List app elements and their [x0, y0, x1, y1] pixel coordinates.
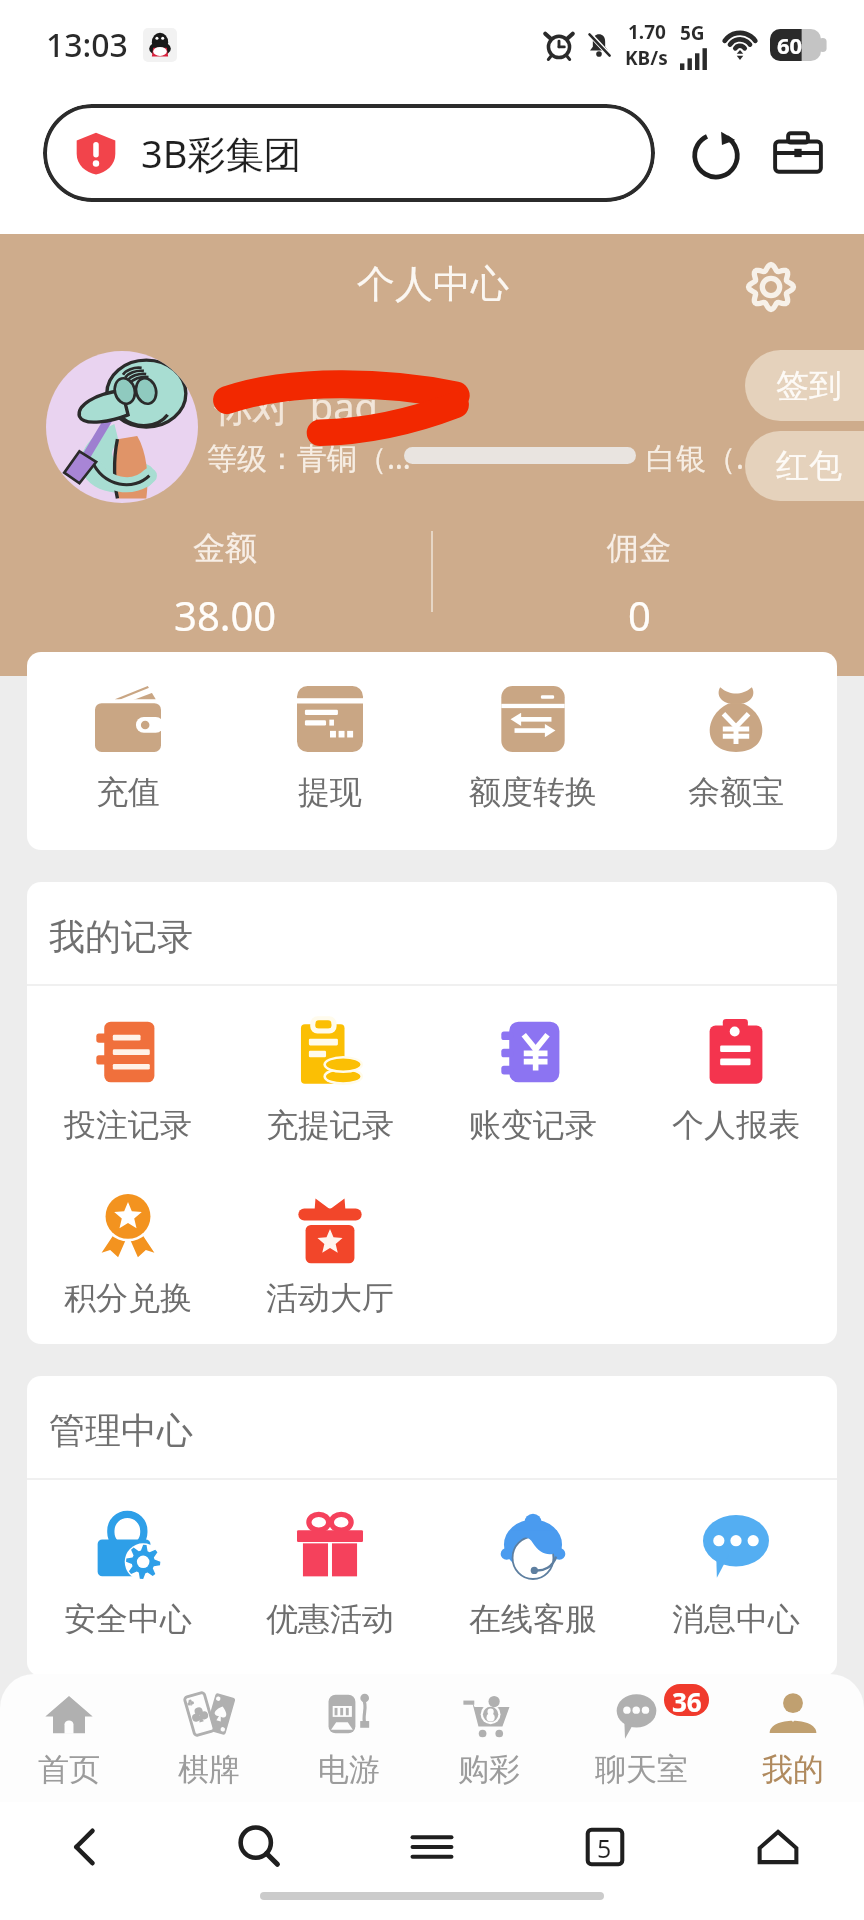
button[interactable]: 消息中心 — [634, 1513, 837, 1639]
button[interactable]: 36 — [560, 1682, 722, 1789]
staticText: 积分兑换 — [64, 1278, 192, 1318]
staticText: 个人中心 — [357, 260, 509, 308]
button[interactable]: Avatar — [46, 351, 198, 503]
staticText: 聊天室 — [595, 1750, 688, 1789]
staticText: 消息中心 — [672, 1599, 800, 1639]
button[interactable]: 在线客服 — [431, 1513, 634, 1639]
staticText: 5G — [680, 20, 705, 46]
button[interactable]: Back — [0, 1802, 172, 1892]
staticText: 个人报表 — [672, 1105, 800, 1145]
button[interactable]: 额度转换 — [431, 686, 634, 812]
staticText: 我的 — [762, 1750, 824, 1789]
button[interactable]: 安全中心 — [27, 1513, 229, 1639]
staticText: 棋牌 — [178, 1750, 240, 1789]
staticText: 白银（… — [646, 437, 760, 478]
staticText: 提现 — [298, 772, 362, 812]
button[interactable]: Home — [691, 1802, 864, 1892]
button[interactable]: 棋牌 — [138, 1682, 280, 1789]
button[interactable]: 个人报表 — [634, 1019, 837, 1145]
staticText: 电游 — [318, 1750, 380, 1789]
button[interactable]: 购彩 — [418, 1682, 560, 1789]
staticText: 优惠活动 — [266, 1599, 394, 1639]
button[interactable]: Tools — [766, 122, 830, 186]
button[interactable]: Reload — [684, 122, 748, 186]
staticText: 1.70 — [628, 19, 666, 45]
staticText: 佣金 — [607, 528, 671, 568]
staticText: 账变记录 — [469, 1105, 597, 1145]
staticText: 活动大厅 — [266, 1278, 394, 1318]
button[interactable]: 余额宝 — [634, 686, 837, 812]
button[interactable]: 积分兑换 — [27, 1192, 229, 1318]
staticText: 38.00 — [174, 588, 277, 642]
staticText: 额度转换 — [469, 772, 597, 812]
button[interactable]: 佣金 — [414, 528, 864, 642]
staticText: 红包 — [776, 445, 842, 487]
staticText: 等级：青铜（… — [207, 437, 411, 478]
button[interactable]: 充值 — [27, 686, 229, 812]
staticText: 你对 bag — [214, 380, 378, 432]
button[interactable]: Search — [172, 1802, 345, 1892]
button[interactable]: 我的 — [722, 1682, 864, 1789]
staticText: 3B彩集团 — [141, 127, 302, 179]
button[interactable]: 账变记录 — [431, 1019, 634, 1145]
staticText: 我的记录 — [49, 914, 193, 959]
staticText: 投注记录 — [64, 1105, 192, 1145]
button[interactable]: 签到 — [745, 350, 864, 421]
staticText: 金额 — [193, 528, 257, 568]
staticText: 13:03 — [46, 23, 128, 67]
button[interactable]: 金额 — [0, 528, 450, 642]
staticText: 余额宝 — [688, 772, 784, 812]
staticText: 安全中心 — [64, 1599, 192, 1639]
button[interactable]: Settings — [742, 258, 800, 316]
button[interactable]: 3B彩集团 — [43, 104, 655, 202]
button[interactable]: 电游 — [280, 1682, 418, 1789]
button[interactable]: Menu — [345, 1802, 518, 1892]
button[interactable]: 活动大厅 — [229, 1192, 431, 1318]
button[interactable]: 投注记录 — [27, 1019, 229, 1145]
staticText: KB/s — [625, 45, 668, 71]
button[interactable]: 提现 — [229, 686, 431, 812]
staticText: 在线客服 — [469, 1599, 597, 1639]
staticText: 充值 — [96, 772, 160, 812]
staticText: 购彩 — [458, 1750, 520, 1789]
button[interactable]: 首页 — [0, 1682, 138, 1789]
staticText: 充提记录 — [266, 1105, 394, 1145]
staticText: 首页 — [38, 1750, 100, 1789]
staticText: 管理中心 — [49, 1408, 193, 1453]
button[interactable]: 红包 — [745, 431, 864, 501]
staticText: 36 — [672, 1684, 702, 1716]
button[interactable]: 优惠活动 — [229, 1513, 431, 1639]
staticText: 签到 — [776, 365, 842, 407]
button[interactable]: 充提记录 — [229, 1019, 431, 1145]
staticText: 5 — [597, 1831, 612, 1865]
staticText: 60 — [777, 30, 803, 60]
button[interactable]: Tabs — [518, 1802, 691, 1892]
staticText: 0 — [628, 588, 651, 642]
